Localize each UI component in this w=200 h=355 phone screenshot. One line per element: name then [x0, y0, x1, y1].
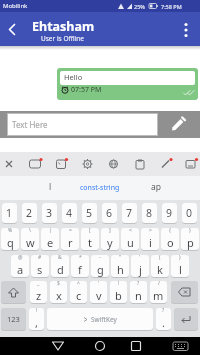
staticText: z — [36, 288, 42, 303]
button[interactable]: ? — [156, 308, 171, 330]
staticText: 2 — [26, 206, 33, 220]
staticText: ( — [159, 255, 161, 261]
staticText: d — [57, 262, 64, 277]
staticText: e — [47, 235, 54, 250]
staticText: _ — [37, 281, 40, 287]
button[interactable]: 6 — [102, 203, 117, 223]
staticText: 7 — [126, 206, 133, 220]
button[interactable] — [48, 337, 68, 355]
button[interactable] — [57, 68, 198, 100]
button[interactable]: ' — [131, 255, 149, 277]
button[interactable]: ^ — [70, 281, 87, 303]
staticText: SwiftKey — [91, 315, 117, 324]
button[interactable]: ( — [151, 255, 169, 277]
button[interactable]: ! — [29, 308, 44, 330]
staticText: @ — [18, 255, 23, 261]
staticText: % — [8, 228, 13, 234]
staticText: j — [139, 262, 142, 277]
staticText: ! — [36, 308, 38, 314]
button[interactable]: 5 — [82, 203, 97, 223]
button[interactable]: 123 — [1, 308, 26, 330]
staticText: ' — [98, 281, 100, 287]
button[interactable]: ) — [171, 255, 189, 277]
staticText: n — [135, 288, 142, 303]
button[interactable]: 2 — [22, 203, 37, 223]
staticText: # — [38, 255, 42, 261]
button[interactable]: ! — [110, 281, 127, 303]
staticText: ] — [109, 228, 111, 234]
button[interactable]: 4 — [62, 203, 77, 223]
button[interactable]: % — [1, 228, 19, 250]
button[interactable]: 1 — [2, 203, 17, 223]
staticText: y — [107, 235, 113, 250]
button[interactable]: > — [141, 228, 159, 250]
staticText: Mobilink — [3, 2, 28, 10]
button[interactable] — [5, 23, 19, 36]
staticText: User is Offline — [41, 34, 84, 43]
staticText: o — [167, 235, 174, 250]
staticText: | — [49, 228, 52, 234]
button[interactable] — [174, 308, 198, 330]
button[interactable] — [180, 18, 192, 40]
button[interactable]: | — [41, 228, 59, 250]
button[interactable]: } — [181, 228, 199, 250]
staticText: < — [129, 228, 132, 234]
button[interactable]: SwiftKey — [47, 308, 153, 330]
staticText: ? — [137, 281, 140, 287]
button[interactable]: 7 — [122, 203, 137, 223]
button[interactable]: @ — [11, 255, 29, 277]
button[interactable] — [90, 337, 110, 355]
staticText: [ — [89, 228, 91, 234]
button[interactable]: _ — [30, 281, 47, 303]
button[interactable]: < — [121, 228, 139, 250]
button[interactable]: 3 — [42, 203, 57, 223]
button[interactable]: * — [71, 255, 89, 277]
staticText: > — [149, 228, 152, 234]
staticText: k — [157, 262, 163, 277]
button[interactable]: \ — [21, 228, 39, 250]
staticText: m — [153, 288, 164, 303]
button[interactable]: const-string — [67, 176, 133, 200]
button[interactable]: 0 — [182, 203, 197, 223]
staticText: / — [158, 281, 160, 287]
staticText: . — [162, 315, 165, 330]
staticText: q — [7, 235, 14, 250]
staticText: u — [127, 235, 134, 250]
button[interactable]: ? — [130, 281, 147, 303]
button[interactable] — [7, 113, 158, 136]
staticText: 07:57 PM — [71, 85, 102, 95]
button[interactable]: " — [111, 255, 129, 277]
button[interactable]: # — [31, 255, 49, 277]
button[interactable]: - — [91, 255, 109, 277]
button[interactable]: [ — [81, 228, 99, 250]
button[interactable]: 8 — [142, 203, 157, 223]
button[interactable]: { — [161, 228, 179, 250]
button[interactable]: = — [61, 228, 79, 250]
staticText: p — [187, 235, 194, 250]
staticText: 6 — [106, 206, 113, 220]
staticText: { — [169, 228, 171, 234]
button[interactable]: / — [150, 281, 167, 303]
staticText: ) — [179, 255, 181, 261]
button[interactable] — [1, 281, 26, 303]
button[interactable] — [170, 337, 192, 355]
staticText: Text Here — [12, 119, 48, 130]
staticText: b — [115, 288, 122, 303]
button[interactable]: $ — [50, 281, 67, 303]
staticText: l — [179, 262, 182, 277]
staticText: & — [58, 255, 62, 261]
staticText: = — [69, 228, 72, 234]
button[interactable]: 9 — [162, 203, 177, 223]
staticText: r — [68, 235, 73, 250]
staticText: const-string — [80, 183, 120, 193]
button[interactable] — [171, 281, 198, 303]
staticText: 0 — [186, 206, 193, 220]
button[interactable]: ' — [90, 281, 107, 303]
button[interactable]: ] — [101, 228, 119, 250]
button[interactable] — [166, 113, 190, 136]
button[interactable]: & — [51, 255, 69, 277]
staticText: * — [79, 255, 82, 261]
staticText: 4 — [66, 206, 73, 220]
button[interactable] — [126, 337, 146, 355]
staticText: 3 — [46, 206, 53, 220]
